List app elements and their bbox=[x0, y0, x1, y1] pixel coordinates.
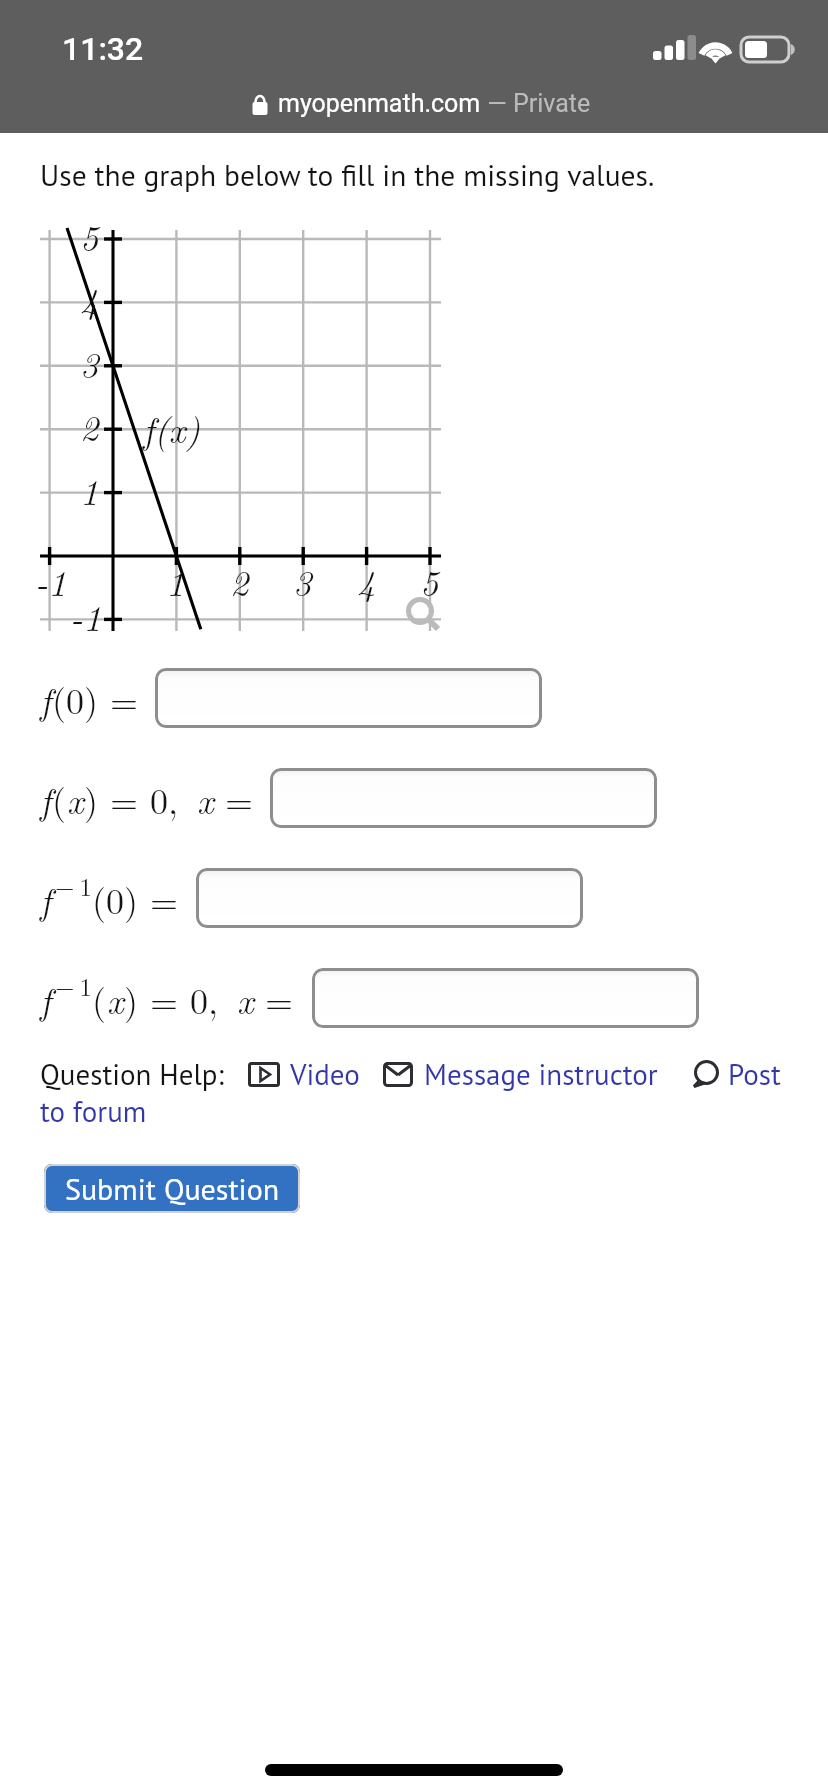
staticText: f bbox=[40, 873, 52, 924]
staticText: x bbox=[67, 773, 84, 824]
button[interactable]: to forum bbox=[40, 1092, 147, 1130]
staticText: (0) bbox=[92, 873, 139, 924]
staticText: − 1 bbox=[55, 968, 92, 1003]
staticText: 2 bbox=[80, 400, 99, 451]
staticText: = bbox=[110, 673, 139, 724]
staticText: -1 bbox=[35, 555, 67, 606]
staticText: x bbox=[197, 773, 214, 824]
button[interactable]: Submit Question bbox=[44, 1164, 300, 1213]
staticText: x bbox=[237, 973, 254, 1024]
button[interactable]: Answer field bbox=[270, 768, 657, 828]
staticText: 0, bbox=[190, 973, 219, 1024]
staticText: 2 bbox=[230, 555, 249, 606]
staticText: ( bbox=[92, 973, 107, 1024]
button[interactable]: Answer field bbox=[312, 968, 699, 1028]
staticText: = bbox=[110, 773, 139, 824]
staticText: ( bbox=[52, 773, 67, 824]
staticText: 4 bbox=[80, 273, 99, 324]
staticText: 3 bbox=[293, 555, 312, 606]
staticText: (0) bbox=[52, 673, 99, 724]
staticText: = bbox=[265, 973, 294, 1024]
staticText: = bbox=[150, 873, 179, 924]
staticText: 0, bbox=[150, 773, 179, 824]
button[interactable]: Answer field bbox=[155, 668, 542, 728]
staticText: 4 bbox=[357, 555, 376, 606]
staticText: Message instructor bbox=[424, 1055, 658, 1093]
staticText: — bbox=[481, 89, 513, 118]
staticText: 11:32 bbox=[62, 30, 144, 68]
staticText: 5 bbox=[420, 555, 439, 606]
staticText: = bbox=[150, 973, 179, 1024]
staticText: Private bbox=[513, 89, 591, 118]
staticText: f bbox=[40, 773, 52, 824]
button[interactable]: Answer field bbox=[196, 868, 583, 928]
button[interactable]: Video bbox=[248, 1055, 360, 1093]
staticText: Submit Question bbox=[65, 1169, 280, 1208]
staticText: Question Help: bbox=[40, 1055, 224, 1093]
staticText: 1 bbox=[166, 555, 185, 606]
staticText: Use the graph below to fill in the missi… bbox=[40, 156, 655, 194]
staticText: ) bbox=[84, 773, 99, 824]
staticText: 5 bbox=[80, 210, 99, 261]
staticText: -1 bbox=[70, 590, 102, 641]
staticText: f(x) bbox=[143, 402, 201, 453]
staticText: − 1 bbox=[55, 868, 92, 903]
button[interactable]: Post bbox=[692, 1055, 781, 1093]
staticText: 1 bbox=[80, 464, 99, 515]
staticText: = bbox=[225, 773, 254, 824]
staticText: Video bbox=[290, 1055, 360, 1093]
button[interactable]: Message instructor bbox=[383, 1055, 658, 1093]
staticText: myopenmath.com bbox=[278, 89, 481, 118]
staticText: 3 bbox=[80, 337, 99, 388]
other: Status icons bbox=[650, 30, 810, 66]
staticText: f bbox=[40, 673, 52, 724]
staticText: ) bbox=[124, 973, 139, 1024]
staticText: f bbox=[40, 973, 52, 1024]
staticText: Post bbox=[728, 1055, 781, 1093]
staticText: x bbox=[107, 973, 124, 1024]
